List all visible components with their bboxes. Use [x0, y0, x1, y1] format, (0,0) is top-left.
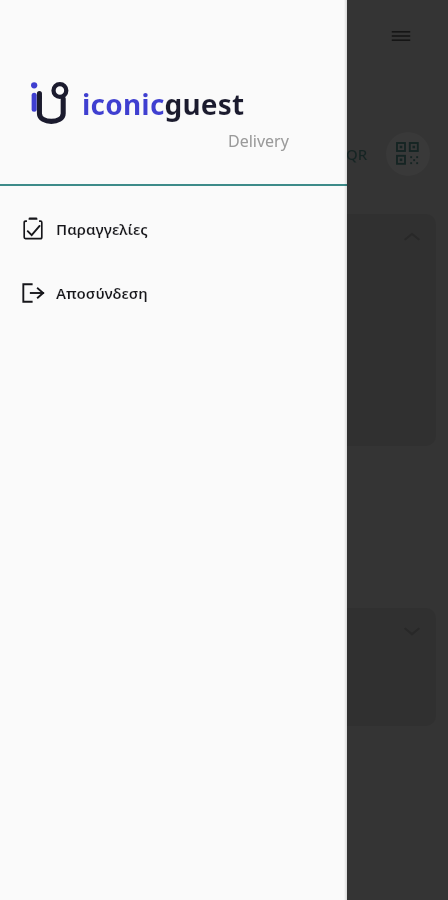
staticText: Δωμάτιο 22	[26, 620, 402, 642]
staticText: Αποσύνδεση	[56, 283, 148, 303]
button[interactable]: Δωμάτιο 21	[12, 214, 436, 446]
staticText: Δωμάτιο 21	[26, 226, 402, 248]
button[interactable]: Παραγγελίες	[0, 208, 347, 250]
button[interactable]: Menu	[386, 21, 416, 51]
staticText: Παραγγελίες	[56, 219, 148, 239]
button[interactable]: Scan QR	[386, 132, 430, 176]
button[interactable]: Αποσύνδεση	[0, 272, 347, 314]
staticText: iconicguest	[82, 85, 245, 123]
staticText: Σάρωση QR	[284, 144, 368, 164]
button[interactable]: Δωμάτιο 22	[12, 608, 436, 726]
staticText: Delivery	[228, 130, 289, 152]
